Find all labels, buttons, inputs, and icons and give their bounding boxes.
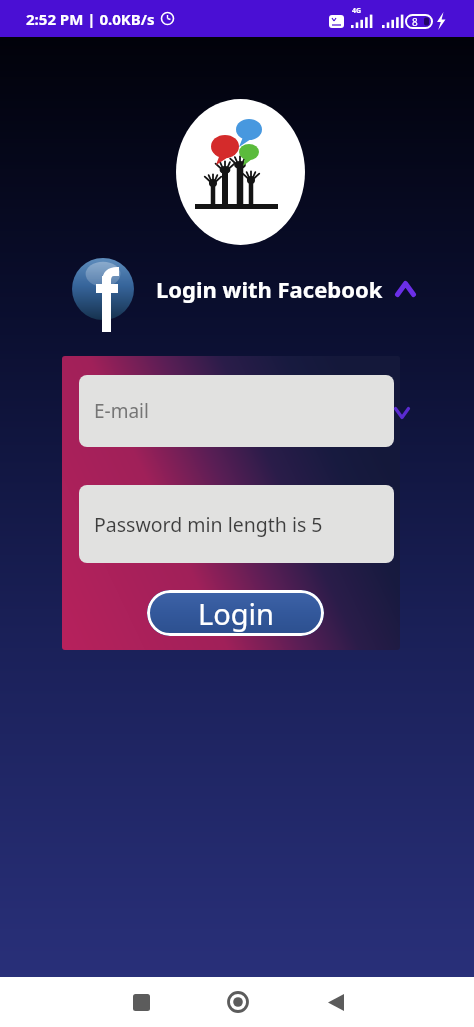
button[interactable]: Login (147, 590, 324, 636)
button[interactable]: Login with Facebook (72, 258, 415, 320)
staticText: Login with Facebook (156, 274, 383, 304)
staticText: 2:52 PM | 0.0KB/s (26, 9, 155, 29)
button[interactable] (117, 978, 165, 1026)
staticText: Password min length is 5 (94, 511, 323, 538)
button[interactable]: Password min length is 5 (79, 485, 394, 563)
button[interactable]: E-mail (79, 375, 394, 447)
staticText: 4G (352, 6, 362, 16)
staticText: E-mail (94, 398, 149, 424)
button[interactable] (312, 978, 360, 1026)
button[interactable] (214, 978, 262, 1026)
staticText: 8 (412, 15, 418, 29)
staticText: Login (198, 594, 274, 633)
